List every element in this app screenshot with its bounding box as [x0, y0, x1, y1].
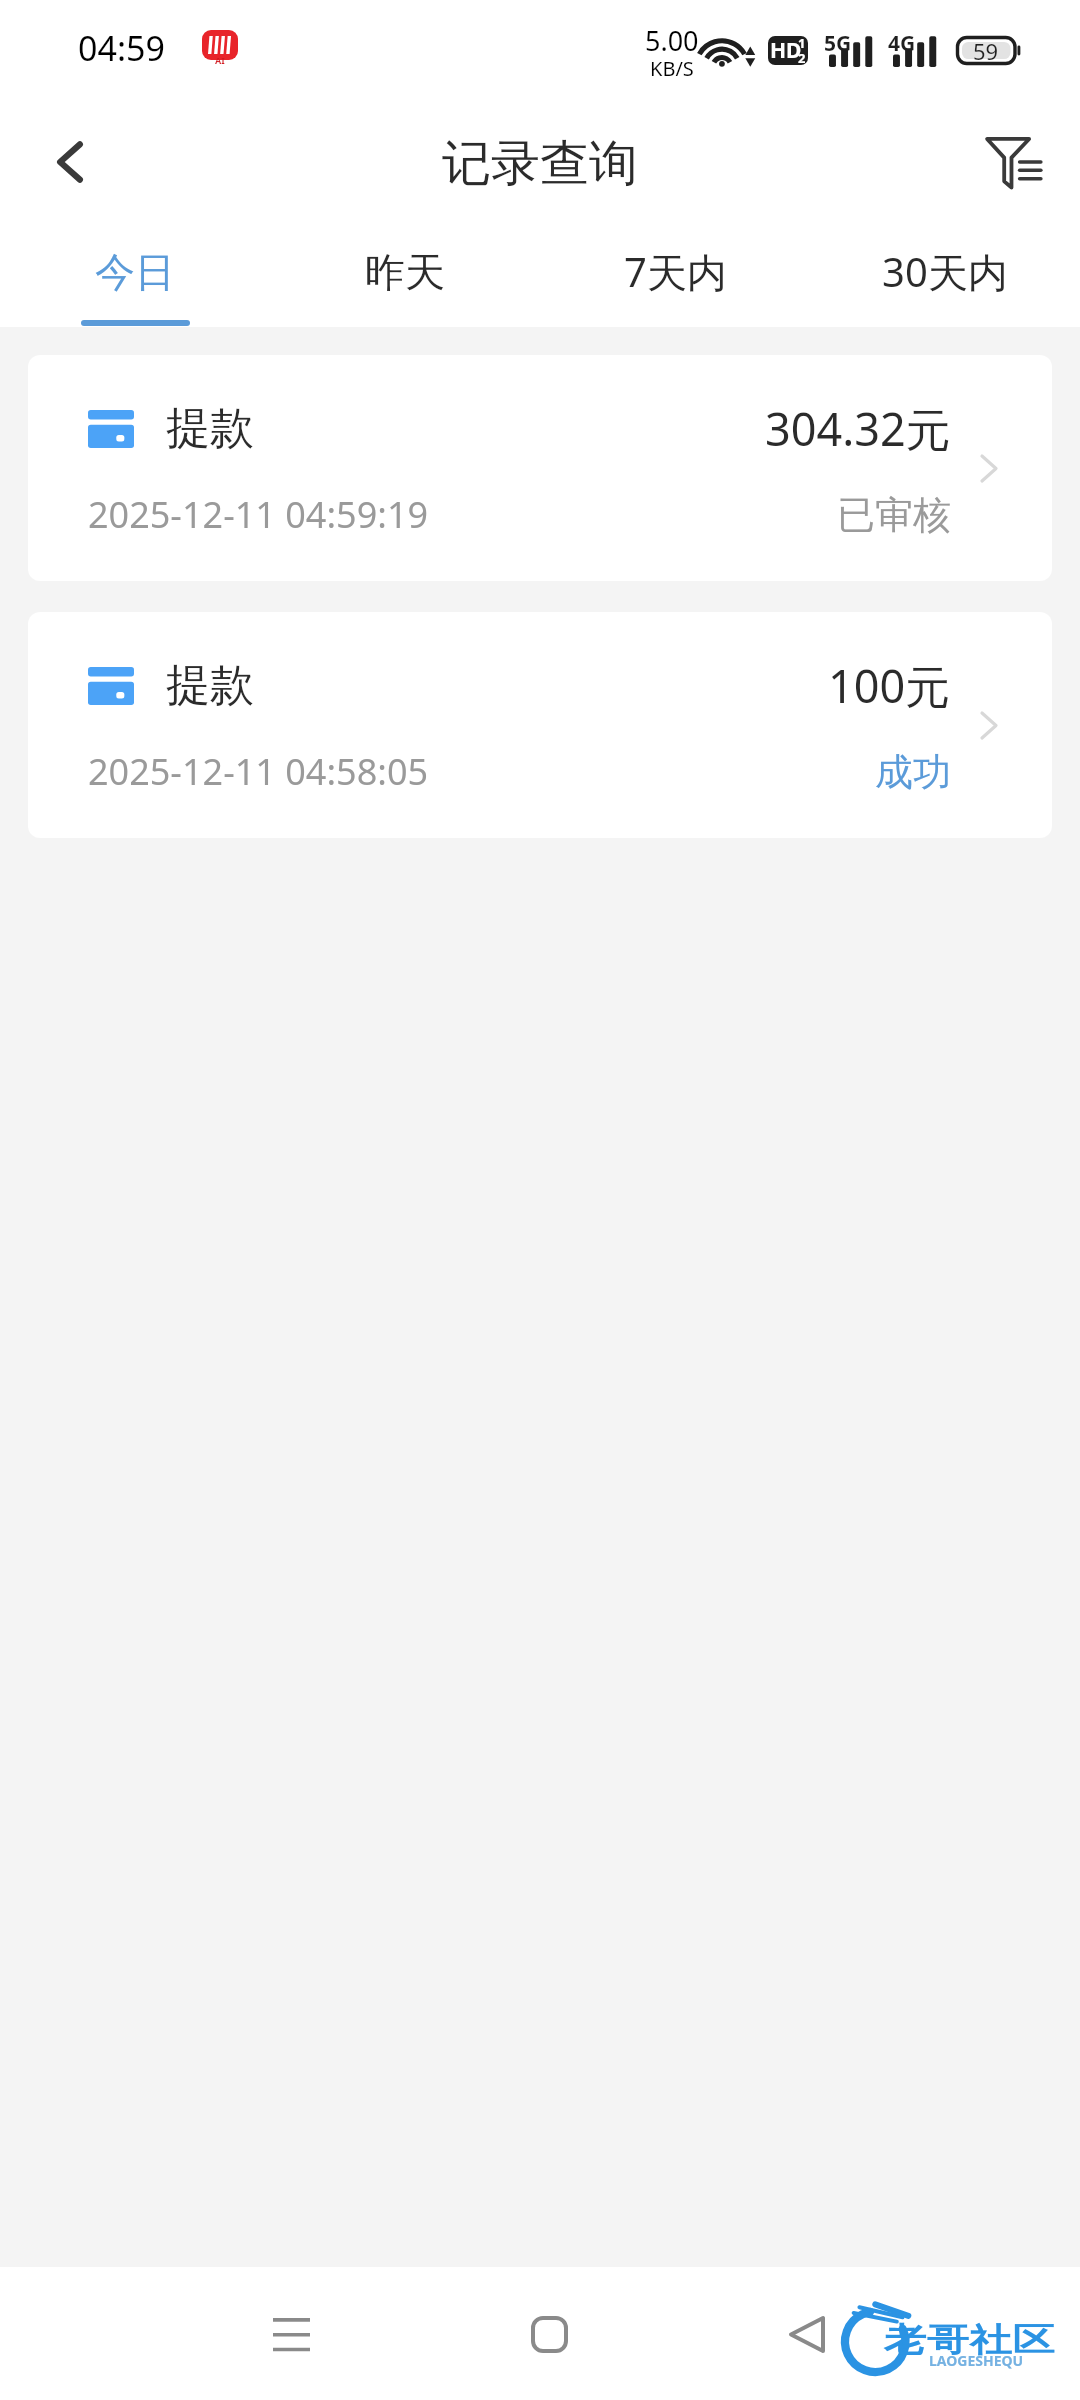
button[interactable]: 7天内 [540, 220, 810, 327]
staticText: 昨天 [365, 247, 445, 297]
staticText: 1 [798, 36, 806, 52]
staticText: 2 [798, 49, 806, 65]
staticText: 5G [824, 29, 852, 58]
button[interactable]: Back [38, 130, 102, 194]
button[interactable]: Filter [982, 131, 1046, 195]
button[interactable]: 提款 [28, 355, 1052, 581]
button[interactable]: 昨天 [270, 220, 540, 327]
staticText: 2025-12-11 04:58:05 [88, 747, 429, 796]
staticText: AI [215, 54, 225, 66]
staticText: 记录查询 [442, 133, 638, 195]
staticText: 提款 [166, 401, 254, 456]
staticText: 成功 [875, 748, 951, 796]
staticText: KB/S [650, 55, 694, 82]
button[interactable]: Recent apps [245, 2288, 337, 2380]
staticText: 提款 [166, 658, 254, 713]
staticText: 今日 [95, 247, 175, 297]
button[interactable]: Home [503, 2288, 595, 2380]
staticText: 100元 [828, 655, 951, 716]
button[interactable]: 提款 [28, 612, 1052, 838]
staticText: 5.00 [645, 22, 699, 59]
button[interactable]: 30天内 [810, 220, 1080, 327]
staticText: 4G [888, 29, 916, 58]
staticText: LAOGESHEQU [929, 2351, 1024, 2370]
staticText: 30天内 [882, 244, 1008, 299]
staticText: 304.32元 [765, 398, 951, 459]
staticText: HD [770, 36, 802, 65]
staticText: 已审核 [837, 491, 951, 539]
staticText: 2025-12-11 04:59:19 [88, 490, 429, 539]
staticText: 7天内 [624, 244, 727, 299]
staticText: 老哥社区 [884, 2320, 1055, 2361]
staticText: 04:59 [78, 25, 165, 71]
button[interactable]: 今日 [0, 220, 270, 327]
button[interactable]: Back [761, 2288, 853, 2380]
staticText: 59 [973, 36, 999, 65]
